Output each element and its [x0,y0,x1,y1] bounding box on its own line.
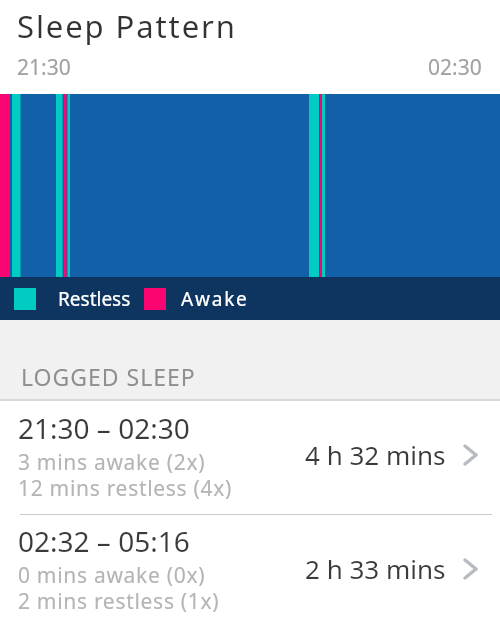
staticText: 0 mins awake (0x) [18,561,206,590]
staticText: 21:30 [17,53,71,82]
staticText: 02:30 [428,53,482,82]
button[interactable]: 21:30 – 02:30 [0,401,500,514]
staticText: 4 h 32 mins [305,437,446,472]
staticText: 02:32 – 05:16 [18,522,190,560]
staticText: 21:30 – 02:30 [18,409,190,447]
staticText: 3 mins awake (2x) [18,448,206,477]
staticText: LOGGED SLEEP [21,361,196,392]
staticText: Awake [181,286,249,312]
staticText: Sleep Pattern [17,5,237,47]
button[interactable]: 02:32 – 05:16 [0,515,500,631]
staticText: 2 h 33 mins [305,551,446,586]
staticText: 12 mins restless (4x) [18,474,233,503]
staticText: Restless [58,286,131,312]
staticText: 2 mins restless (1x) [18,587,220,616]
